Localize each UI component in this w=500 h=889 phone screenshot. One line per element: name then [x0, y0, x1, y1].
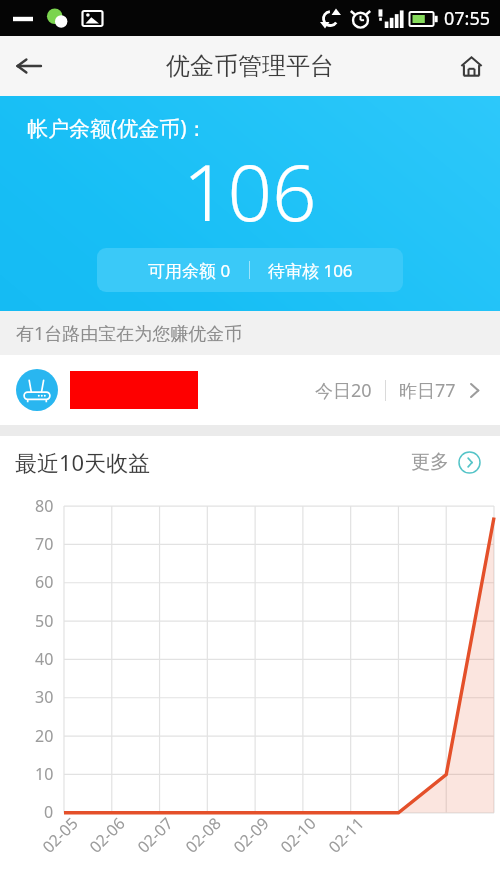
staticText: 20 [35, 725, 54, 747]
staticText: 40 [35, 648, 54, 670]
staticText: 今日20 [315, 378, 372, 403]
staticText: 02-09 [228, 812, 274, 858]
staticText: 80 [35, 495, 54, 517]
staticText: 02-11 [323, 812, 369, 858]
button[interactable]: 可用余额 0 [97, 248, 403, 292]
button[interactable]: 更多 [407, 446, 485, 478]
button[interactable]: Home [442, 37, 500, 95]
staticText: 50 [35, 610, 54, 632]
staticText: 70 [35, 533, 54, 555]
staticText: 昨日77 [399, 378, 456, 403]
staticText: 0 [44, 801, 54, 823]
staticText: 02-07 [132, 812, 178, 858]
staticText: 10 [35, 763, 54, 785]
staticText: 02-05 [37, 812, 83, 858]
staticText: 最近10天收益 [15, 447, 151, 477]
staticText: 更多 [411, 450, 449, 474]
staticText: 106 [183, 138, 317, 244]
staticText: 07:55 [444, 6, 491, 31]
staticText: 可用余额 0 [148, 259, 231, 282]
staticText: 60 [35, 571, 54, 593]
staticText: 30 [35, 686, 54, 708]
staticText: 有1台路由宝在为您赚优金币 [16, 321, 243, 346]
staticText: 02-08 [180, 812, 226, 858]
staticText: 优金币管理平台 [166, 51, 334, 81]
button[interactable]: Back [0, 37, 58, 95]
staticText: 02-10 [275, 812, 321, 858]
staticText: 待审核 106 [268, 259, 353, 282]
staticText: 02-06 [84, 812, 130, 858]
staticText: 帐户余额(优金币)： [27, 114, 208, 143]
button[interactable]: 今日20 [0, 355, 500, 425]
